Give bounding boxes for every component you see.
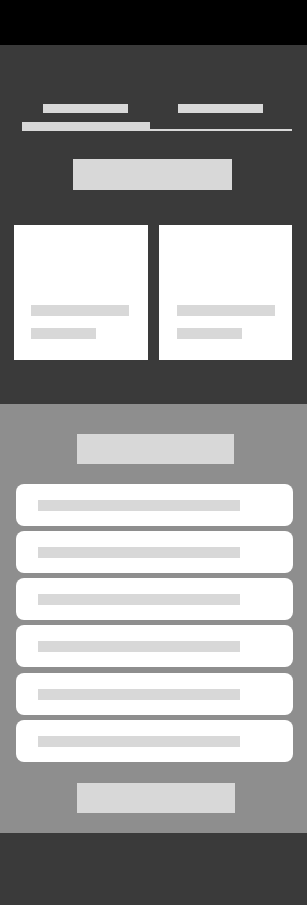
button[interactable]: List item 4: [16, 625, 293, 667]
button[interactable]: Feature card two: [159, 225, 292, 360]
button[interactable]: List item 2: [16, 531, 293, 573]
button[interactable]: List item 6: [16, 720, 293, 762]
button[interactable]: List item 1: [16, 484, 293, 526]
button[interactable]: Feature card one: [14, 225, 148, 360]
button[interactable]: List item 5: [16, 673, 293, 715]
button[interactable]: List item 3: [16, 578, 293, 620]
